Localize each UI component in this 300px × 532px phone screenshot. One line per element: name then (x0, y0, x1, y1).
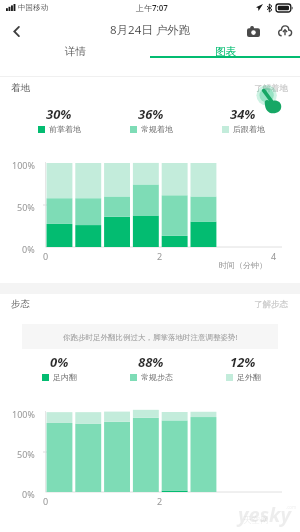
button[interactable]: 了解步态 (254, 299, 300, 310)
staticText: 100% (12, 408, 35, 420)
staticText: 详情 (65, 45, 86, 58)
staticText: 你跑步时足外翻比例过大，脚掌落地时注意调整姿势! (63, 332, 238, 342)
button[interactable]: Back (3, 18, 29, 44)
staticText: 前掌着地 (49, 124, 81, 134)
button[interactable]: Take photo (241, 19, 265, 43)
staticText: 2 (157, 495, 163, 507)
button[interactable]: 详情 (0, 46, 150, 59)
staticText: 50% (17, 448, 35, 460)
staticText: 0 (43, 250, 49, 262)
staticText: 0% (22, 488, 35, 500)
staticText: 12% (230, 353, 256, 371)
staticText: 步态 (11, 298, 30, 310)
button[interactable]: 了解着地 (254, 83, 300, 94)
staticText: 0% (50, 353, 69, 371)
staticText: 常规步态 (141, 372, 173, 382)
staticText: 36% (138, 105, 164, 123)
staticText: 常规着地 (141, 124, 173, 134)
staticText: 50% (17, 201, 35, 213)
staticText: 0 (43, 495, 49, 507)
staticText: 图表 (215, 45, 236, 58)
staticText: 足内翻 (53, 372, 77, 382)
button[interactable]: 图表 (150, 46, 300, 59)
staticText: 着地 (11, 82, 30, 94)
staticText: yesky (238, 501, 291, 528)
staticText: 8月24日 户外跑 (110, 22, 191, 38)
staticText: 2 (157, 250, 163, 262)
staticText: 足外翻 (237, 372, 261, 382)
staticText: .com (286, 504, 297, 510)
staticText: 后跟着地 (233, 124, 265, 134)
staticText: 上午7:07 (136, 2, 168, 13)
staticText: 100% (12, 159, 35, 171)
staticText: 4 (271, 250, 277, 262)
staticText: 中国移动 (18, 3, 48, 12)
staticText: 时间（分钟） (219, 260, 267, 270)
staticText: 34% (230, 105, 256, 123)
staticText: 了解步态 (254, 299, 288, 310)
staticText: 了解着地 (254, 83, 288, 94)
staticText: 30% (46, 105, 72, 123)
staticText: 88% (138, 353, 164, 371)
staticText: 天空网 (243, 515, 269, 526)
staticText: 0% (22, 243, 35, 255)
button[interactable]: Upload to cloud (273, 19, 297, 43)
